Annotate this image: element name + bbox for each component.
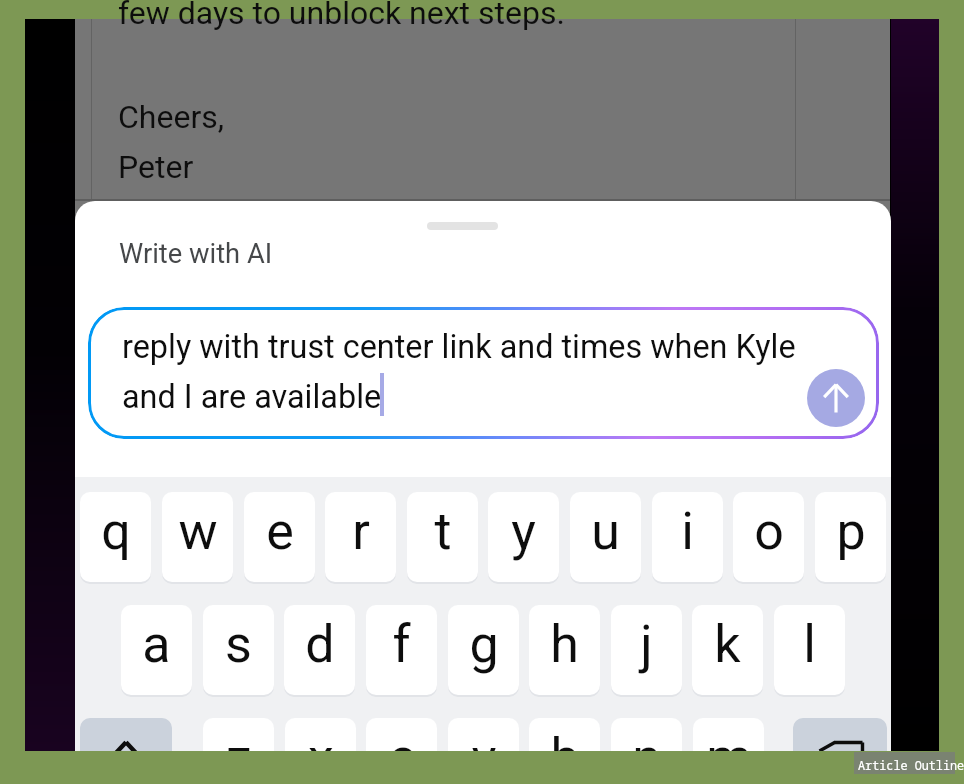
staticText: e — [266, 501, 294, 562]
staticText: Write with AI — [119, 236, 273, 270]
staticText: few days to unblock next steps. — [118, 0, 565, 32]
button[interactable]: c — [366, 718, 437, 751]
staticText: g — [469, 614, 499, 675]
button[interactable]: Backspace — [793, 718, 887, 751]
button[interactable]: v — [448, 718, 519, 751]
button[interactable]: q — [80, 492, 151, 582]
staticText: y — [511, 501, 536, 562]
button[interactable]: t — [407, 492, 478, 582]
button[interactable]: h — [529, 605, 600, 695]
staticText: w — [178, 501, 218, 562]
staticText: f — [392, 614, 411, 675]
staticText: x — [308, 727, 334, 751]
button[interactable]: i — [652, 492, 723, 582]
staticText: n — [632, 727, 661, 751]
staticText: k — [714, 614, 741, 675]
staticText: reply with trust center link and times w… — [122, 325, 796, 367]
staticText: i — [681, 501, 694, 562]
staticText: r — [352, 501, 370, 562]
staticText: p — [836, 501, 866, 562]
button[interactable]: o — [733, 492, 804, 582]
staticText: q — [101, 501, 131, 562]
button[interactable]: z — [203, 718, 274, 751]
button[interactable]: g — [448, 605, 519, 695]
button[interactable]: Write with AI — [119, 236, 273, 270]
button[interactable]: j — [611, 605, 682, 695]
button[interactable]: reply with trust center link and times w… — [88, 307, 879, 439]
button[interactable]: Shift — [80, 718, 172, 751]
button[interactable]: y — [488, 492, 559, 582]
button[interactable]: x — [285, 718, 356, 751]
staticText: d — [305, 614, 335, 675]
button[interactable]: s — [203, 605, 274, 695]
staticText: t — [434, 501, 452, 562]
staticText: o — [754, 501, 784, 562]
staticText: l — [803, 614, 816, 675]
button[interactable]: w — [162, 492, 233, 582]
staticText: j — [640, 614, 653, 675]
button[interactable]: a — [121, 605, 192, 695]
staticText: u — [591, 501, 620, 562]
staticText: a — [142, 614, 171, 675]
button[interactable]: l — [774, 605, 845, 695]
button[interactable]: d — [284, 605, 355, 695]
staticText: and I are available — [122, 375, 382, 417]
button[interactable]: p — [815, 492, 886, 582]
staticText: m — [706, 727, 752, 751]
button[interactable]: f — [366, 605, 437, 695]
staticText: z — [226, 727, 252, 751]
staticText: h — [550, 614, 579, 675]
button[interactable]: n — [611, 718, 682, 751]
staticText: b — [550, 727, 580, 751]
button[interactable]: r — [325, 492, 396, 582]
button[interactable]: Send — [807, 369, 865, 427]
staticText: Cheers, — [118, 96, 225, 136]
staticText: s — [225, 614, 252, 675]
staticText: Article Outline — [858, 757, 964, 773]
button[interactable]: e — [244, 492, 315, 582]
button[interactable]: k — [692, 605, 763, 695]
staticText: v — [471, 727, 497, 751]
button[interactable]: u — [570, 492, 641, 582]
staticText: Peter — [118, 146, 194, 186]
staticText: c — [388, 727, 416, 751]
button[interactable]: b — [529, 718, 600, 751]
button[interactable]: m — [693, 718, 764, 751]
